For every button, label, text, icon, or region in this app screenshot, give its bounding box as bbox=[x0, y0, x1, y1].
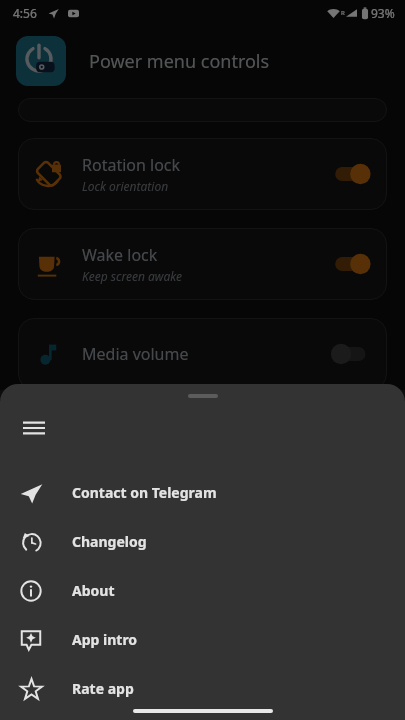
staticText: Changelog bbox=[72, 532, 147, 551]
button[interactable] bbox=[0, 0, 405, 390]
button[interactable]: About bbox=[0, 566, 405, 615]
staticText: 4:56 bbox=[13, 5, 37, 21]
button[interactable]: Contact on Telegram bbox=[0, 468, 405, 517]
staticText: Rate app bbox=[72, 679, 134, 698]
button[interactable]: Media volume toggle bbox=[331, 339, 373, 369]
button[interactable]: Wake lock toggle bbox=[331, 249, 373, 279]
staticText: About bbox=[72, 581, 115, 600]
button[interactable]: Rotation lock toggle bbox=[331, 159, 373, 189]
staticText: 93% bbox=[371, 5, 395, 21]
staticText: Power menu controls bbox=[89, 49, 270, 74]
button[interactable]: App icon bbox=[16, 36, 66, 86]
staticText: Contact on Telegram bbox=[72, 483, 217, 502]
staticText: Keep screen awake bbox=[82, 268, 182, 284]
button[interactable]: App intro bbox=[0, 615, 405, 664]
staticText: App intro bbox=[72, 630, 138, 649]
staticText: Rotation lock bbox=[82, 154, 181, 176]
staticText: R bbox=[341, 9, 345, 17]
button[interactable]: Menu bbox=[14, 408, 54, 448]
button[interactable]: Rate app bbox=[0, 664, 405, 713]
button[interactable]: Changelog bbox=[0, 517, 405, 566]
button[interactable]: Wake lock bbox=[18, 228, 387, 300]
button[interactable]: Rotation lock bbox=[18, 138, 387, 210]
staticText: Media volume bbox=[82, 343, 189, 365]
staticText: Lock orientation bbox=[82, 178, 169, 194]
button[interactable]: Media volume bbox=[18, 318, 387, 390]
staticText: Wake lock bbox=[82, 244, 158, 266]
